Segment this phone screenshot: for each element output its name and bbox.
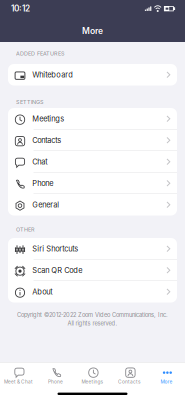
- button[interactable]: Contacts: [8, 129, 177, 151]
- staticText: Phone: [48, 379, 63, 384]
- button[interactable]: Phone: [37, 366, 74, 384]
- button[interactable]: Siri Shortcuts: [8, 238, 177, 259]
- button[interactable]: Scan QR Code: [8, 259, 177, 281]
- button[interactable]: General: [8, 194, 177, 215]
- staticText: Contacts: [118, 379, 141, 384]
- staticText: Phone: [32, 179, 53, 188]
- staticText: OTHER: [16, 226, 35, 233]
- staticText: Contacts: [32, 136, 61, 145]
- button[interactable]: Whiteboard: [8, 64, 177, 85]
- staticText: Whiteboard: [32, 70, 73, 79]
- button[interactable]: Meet & Chat: [0, 366, 37, 384]
- staticText: Siri Shortcuts: [32, 244, 78, 253]
- button[interactable]: Contacts: [111, 366, 148, 384]
- staticText: Meetings: [32, 114, 64, 123]
- staticText: All rights reserved.: [67, 320, 117, 327]
- button[interactable]: Meetings: [74, 366, 111, 384]
- staticText: Chat: [32, 157, 47, 166]
- staticText: General: [32, 200, 59, 209]
- staticText: Meetings: [81, 379, 103, 384]
- staticText: 10:12: [11, 3, 30, 13]
- button[interactable]: Phone: [8, 172, 177, 194]
- staticText: More: [160, 379, 172, 384]
- staticText: Copyright ©2012-2022 Zoom Video Communic…: [17, 311, 168, 318]
- staticText: SETTINGS: [16, 99, 44, 105]
- staticText: ADDED FEATURES: [16, 50, 65, 57]
- staticText: Scan QR Code: [32, 266, 82, 275]
- button[interactable]: Chat: [8, 151, 177, 172]
- staticText: Meet & Chat: [4, 379, 33, 384]
- staticText: About: [32, 287, 52, 296]
- button[interactable]: Meetings: [8, 108, 177, 129]
- staticText: More: [82, 26, 103, 36]
- button[interactable]: About: [8, 281, 177, 302]
- button[interactable]: More: [148, 366, 185, 384]
